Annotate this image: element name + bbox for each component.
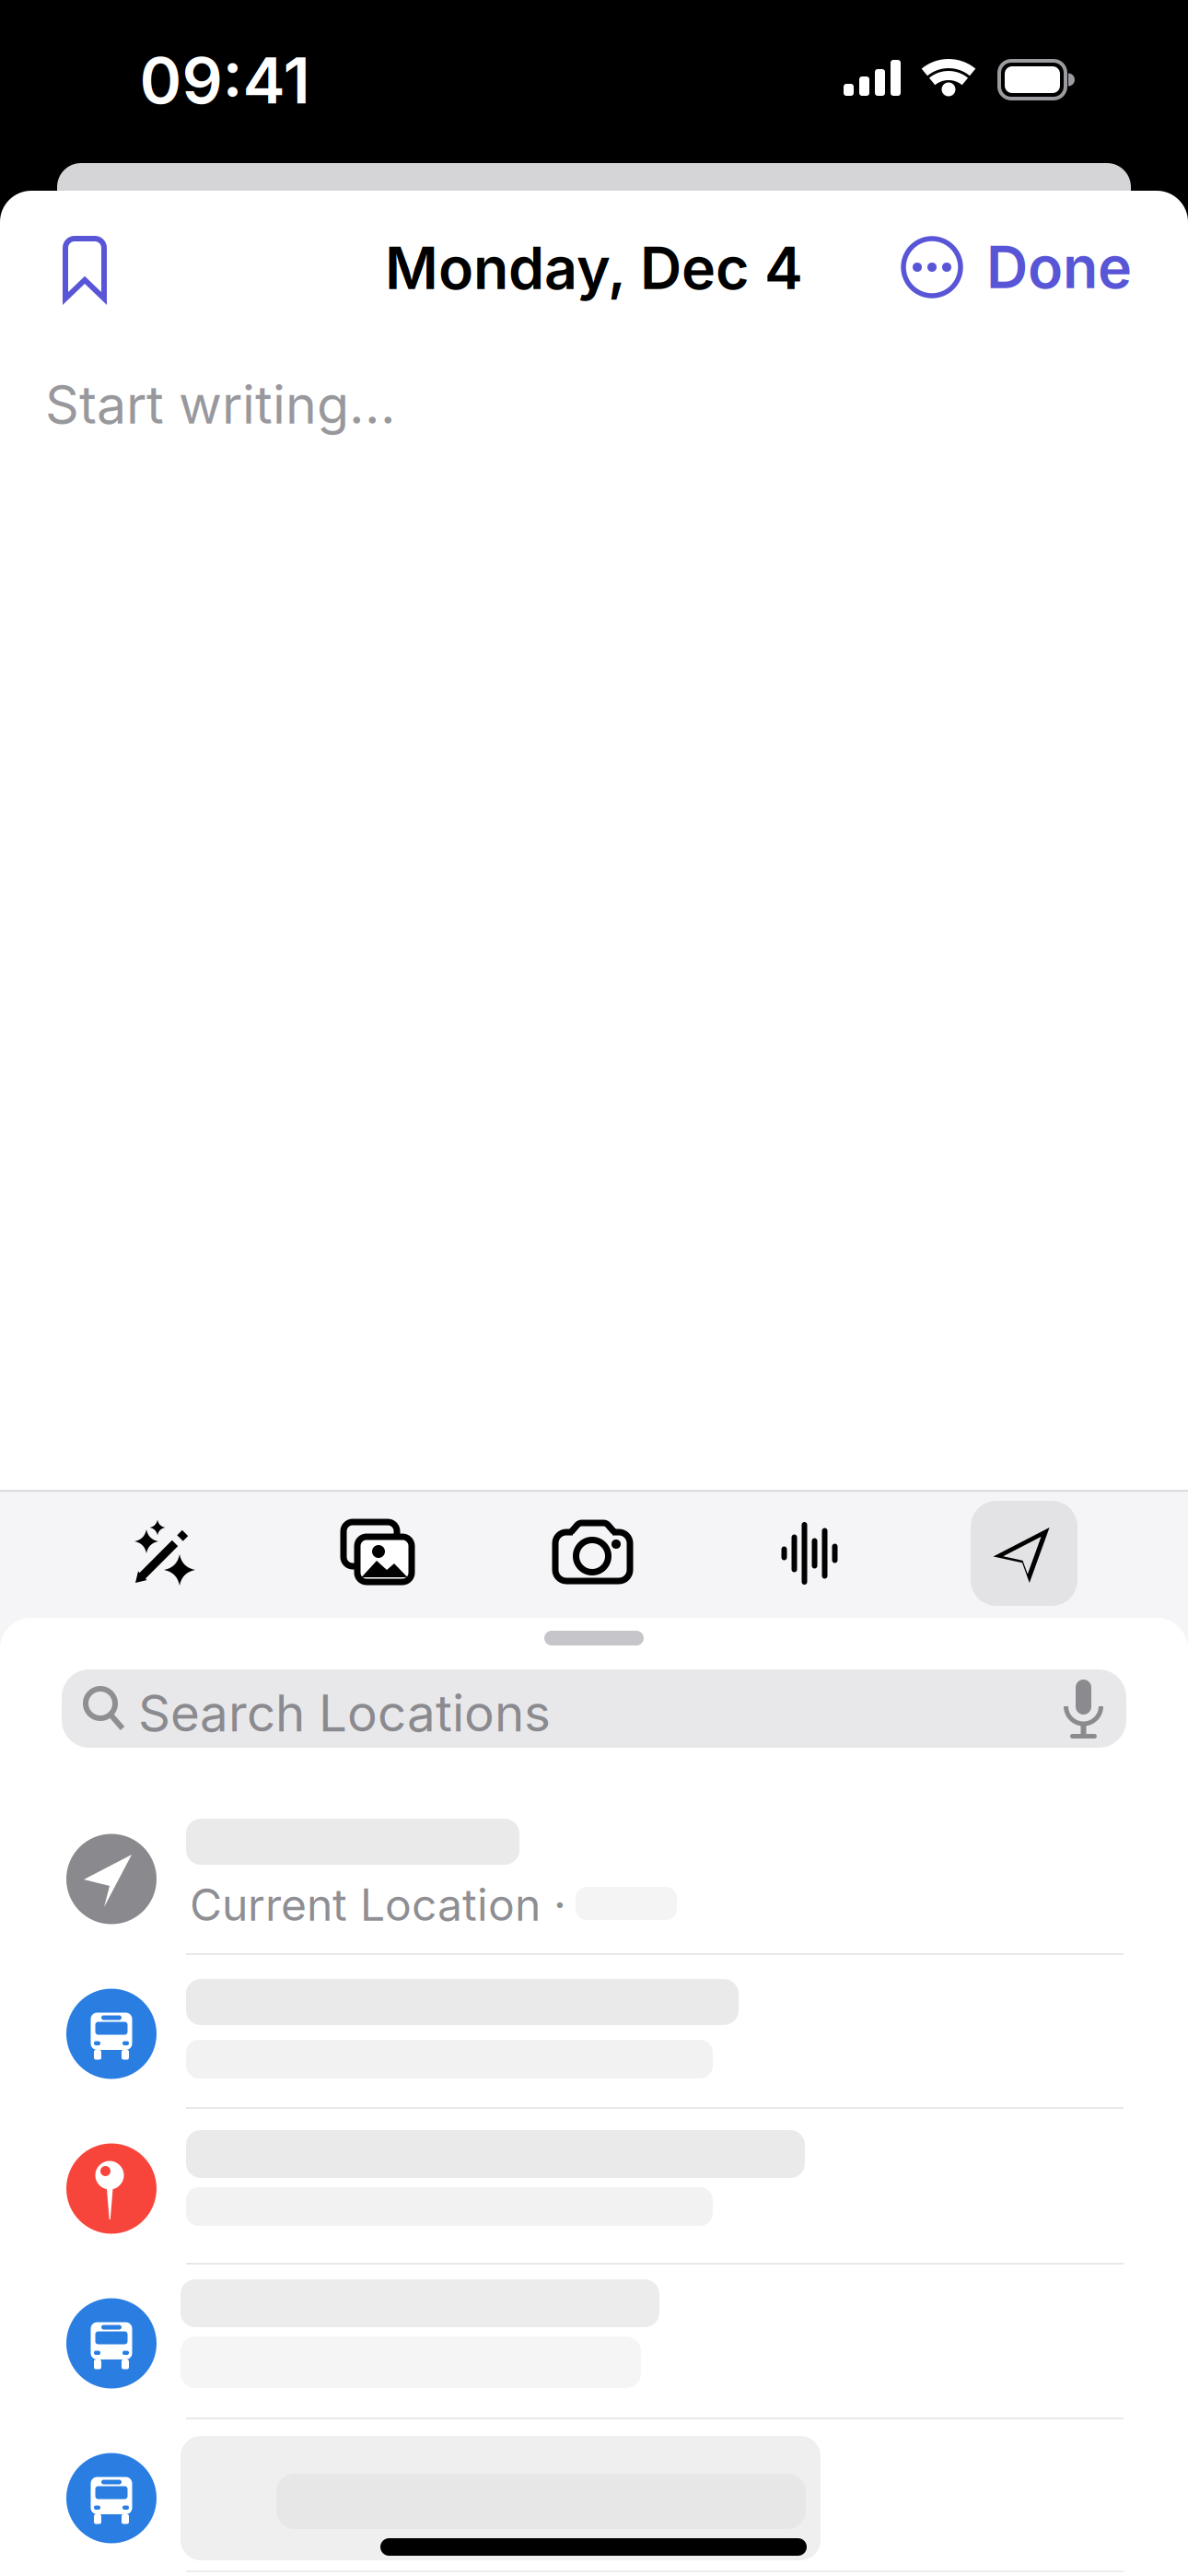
button[interactable]: More <box>891 226 973 309</box>
staticText: 09:41 <box>140 42 310 118</box>
button[interactable]: Transit stop <box>0 1957 1188 2111</box>
staticText: Done <box>986 233 1132 301</box>
staticText: Monday, Dec 4 <box>385 234 803 302</box>
button[interactable]: Location <box>955 1494 1093 1612</box>
staticText: Current Location · <box>190 1879 566 1931</box>
button[interactable]: Search Locations <box>62 1669 1126 1748</box>
button[interactable]: Pinned location <box>0 2112 1188 2266</box>
button[interactable]: Done <box>911 230 1132 304</box>
staticText: Search Locations <box>138 1683 551 1743</box>
button[interactable]: Record audio <box>739 1494 877 1612</box>
button[interactable]: Camera <box>524 1494 662 1612</box>
button[interactable]: Dictate <box>1052 1676 1116 1740</box>
button[interactable]: Current Location <box>0 1802 1188 1956</box>
button[interactable]: Transit stop <box>0 2421 1188 2575</box>
staticText: Start writing... <box>45 373 396 435</box>
button[interactable]: Transit stop <box>0 2266 1188 2420</box>
button[interactable]: Photos <box>309 1494 447 1612</box>
button[interactable]: Writing suggestions <box>94 1494 232 1612</box>
button[interactable]: Bookmark <box>29 215 140 325</box>
